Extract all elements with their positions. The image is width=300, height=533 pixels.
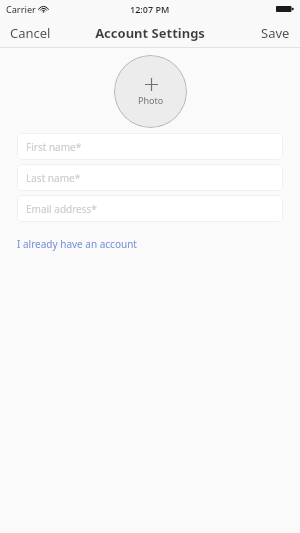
staticText: First name* <box>26 140 82 154</box>
button[interactable]: I already have an account <box>13 234 141 254</box>
button[interactable]: First name* <box>17 133 283 160</box>
staticText: Photo <box>138 94 164 106</box>
button[interactable]: Save <box>251 18 300 48</box>
staticText: 12:07 PM <box>130 3 170 15</box>
staticText: Email address* <box>26 202 97 216</box>
staticText: Last name* <box>26 171 81 185</box>
button[interactable]: Email address* <box>17 195 283 222</box>
button[interactable]: Last name* <box>17 164 283 191</box>
staticText: Account Settings <box>95 24 205 42</box>
staticText: Carrier <box>6 3 36 15</box>
staticText: I already have an account <box>17 237 137 251</box>
button[interactable]: Add photo <box>114 55 187 128</box>
button[interactable]: Cancel <box>0 18 61 48</box>
staticText: Save <box>261 24 290 42</box>
staticText: Cancel <box>10 24 51 42</box>
